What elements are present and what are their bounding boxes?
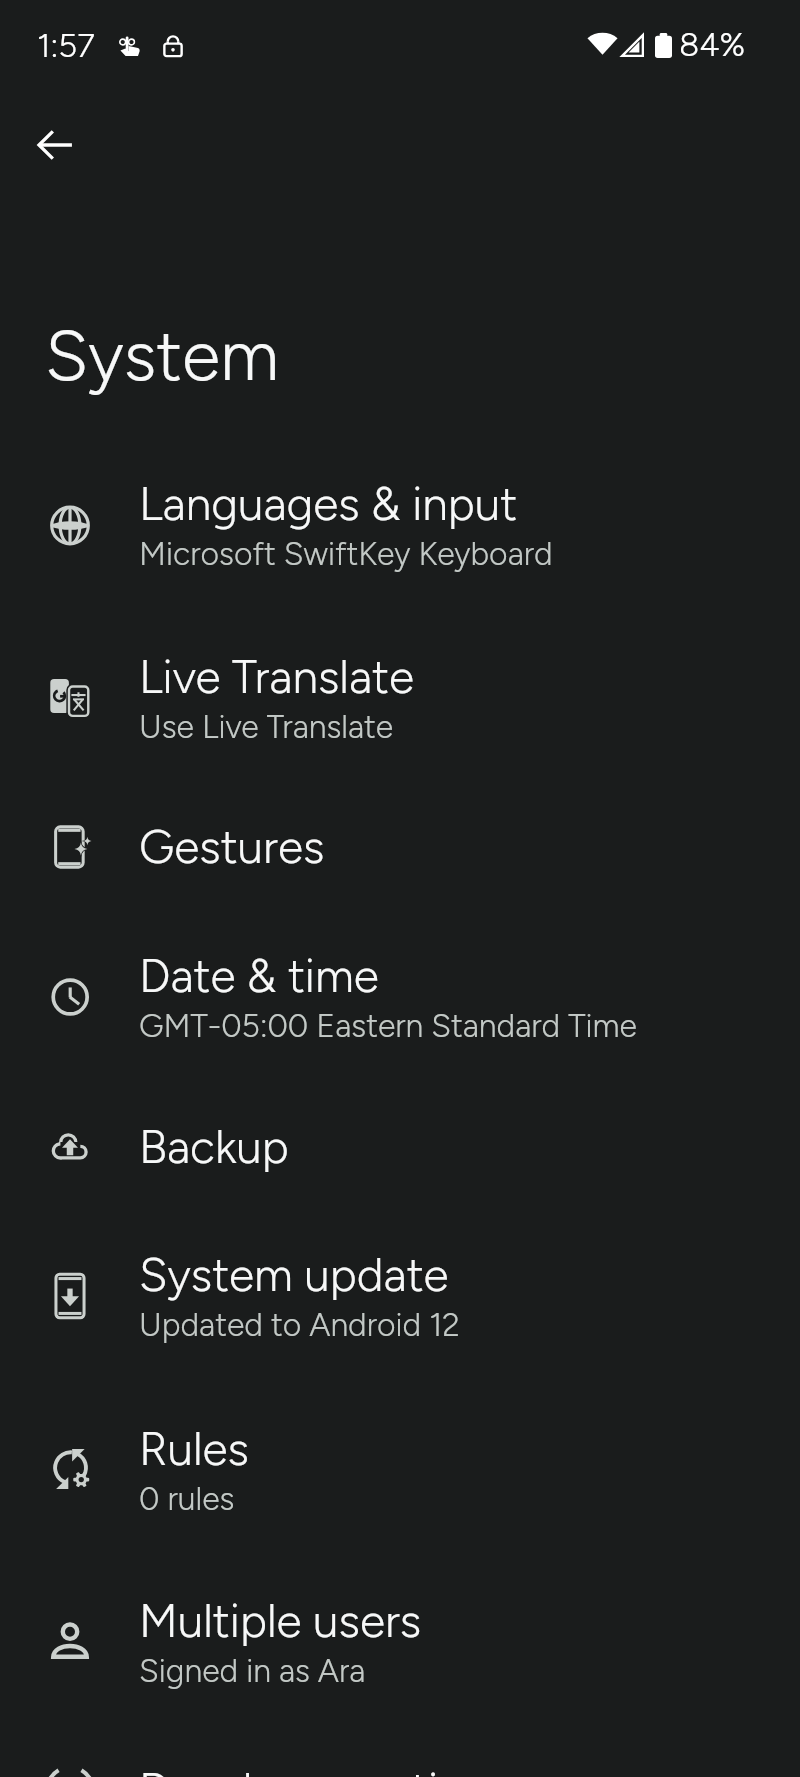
staticText: Multiple users: [139, 1593, 422, 1648]
button[interactable]: Rules: [0, 1383, 800, 1555]
staticText: Developer options: [139, 1762, 512, 1777]
button[interactable]: Gestures: [0, 784, 800, 909]
staticText: Gestures: [139, 819, 325, 874]
staticText: System update: [139, 1247, 449, 1302]
button[interactable]: System update: [0, 1208, 800, 1383]
staticText: System: [45, 313, 280, 397]
staticText: Backup: [139, 1119, 289, 1174]
staticText: Live Translate: [139, 649, 414, 704]
staticText: Date & time: [139, 948, 379, 1003]
staticText: Rules: [139, 1421, 249, 1476]
staticText: 1:57: [37, 26, 95, 66]
button[interactable]: Navigate up: [22, 112, 88, 178]
button[interactable]: Live Translate: [0, 611, 800, 784]
staticText: 84%: [679, 25, 746, 65]
staticText: Updated to Android 12: [139, 1306, 460, 1344]
staticText: 0 rules: [139, 1480, 235, 1518]
staticText: Microsoft SwiftKey Keyboard: [139, 535, 553, 573]
button[interactable]: Backup: [0, 1084, 800, 1208]
button[interactable]: Multiple users: [0, 1555, 800, 1727]
staticText: GMT-05:00 Eastern Standard Time: [139, 1007, 637, 1045]
button[interactable]: Date & time: [0, 909, 800, 1084]
button[interactable]: Languages & input: [0, 438, 800, 611]
button[interactable]: Developer options: [0, 1727, 800, 1777]
staticText: Languages & input: [139, 476, 518, 531]
staticText: Use Live Translate: [139, 708, 394, 746]
staticText: Signed in as Ara: [139, 1652, 366, 1690]
